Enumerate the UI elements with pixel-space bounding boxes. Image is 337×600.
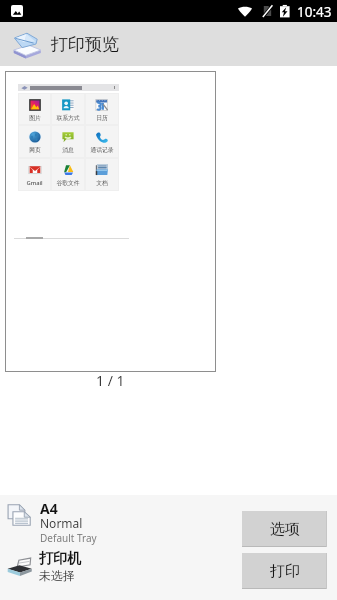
button[interactable]: 图片 bbox=[19, 94, 50, 124]
button[interactable]: 通话记录 bbox=[86, 126, 118, 157]
staticText: 选项 bbox=[270, 520, 300, 539]
staticText: 打印预览 bbox=[51, 34, 119, 55]
staticText: 网页 bbox=[29, 146, 41, 153]
staticText: 日历 bbox=[96, 114, 108, 121]
button[interactable]: A4 bbox=[5, 498, 205, 546]
staticText: 打印机 bbox=[39, 550, 81, 568]
staticText: Default Tray bbox=[40, 531, 97, 545]
staticText: Gmail bbox=[26, 179, 43, 187]
button[interactable]: 网页 bbox=[19, 126, 50, 157]
staticText: 通话记录 bbox=[90, 146, 114, 153]
button[interactable]: 消息 bbox=[52, 126, 84, 157]
button[interactable]: 选项 bbox=[242, 511, 327, 547]
staticText: Normal bbox=[40, 515, 83, 531]
button[interactable]: 文档 bbox=[86, 159, 118, 190]
button[interactable]: 打印机 bbox=[5, 548, 205, 590]
staticText: A4 bbox=[40, 499, 58, 518]
staticText: 未选择 bbox=[39, 568, 75, 583]
staticText: 联系方式 bbox=[56, 114, 80, 121]
staticText: 1 / 1 bbox=[96, 371, 125, 390]
button[interactable]: 日历 bbox=[86, 94, 118, 124]
button[interactable]: 联系方式 bbox=[52, 94, 84, 124]
staticText: 谷歌文件 bbox=[56, 179, 80, 186]
button[interactable]: 打印 bbox=[242, 553, 327, 589]
staticText: 打印 bbox=[270, 562, 300, 581]
staticText: 文档 bbox=[96, 179, 108, 186]
staticText: 图片 bbox=[29, 114, 41, 121]
staticText: 10:43 bbox=[297, 3, 332, 21]
button[interactable]: 谷歌文件 bbox=[52, 159, 84, 190]
staticText: 消息 bbox=[62, 146, 74, 153]
button[interactable]: Gmail bbox=[19, 159, 50, 190]
